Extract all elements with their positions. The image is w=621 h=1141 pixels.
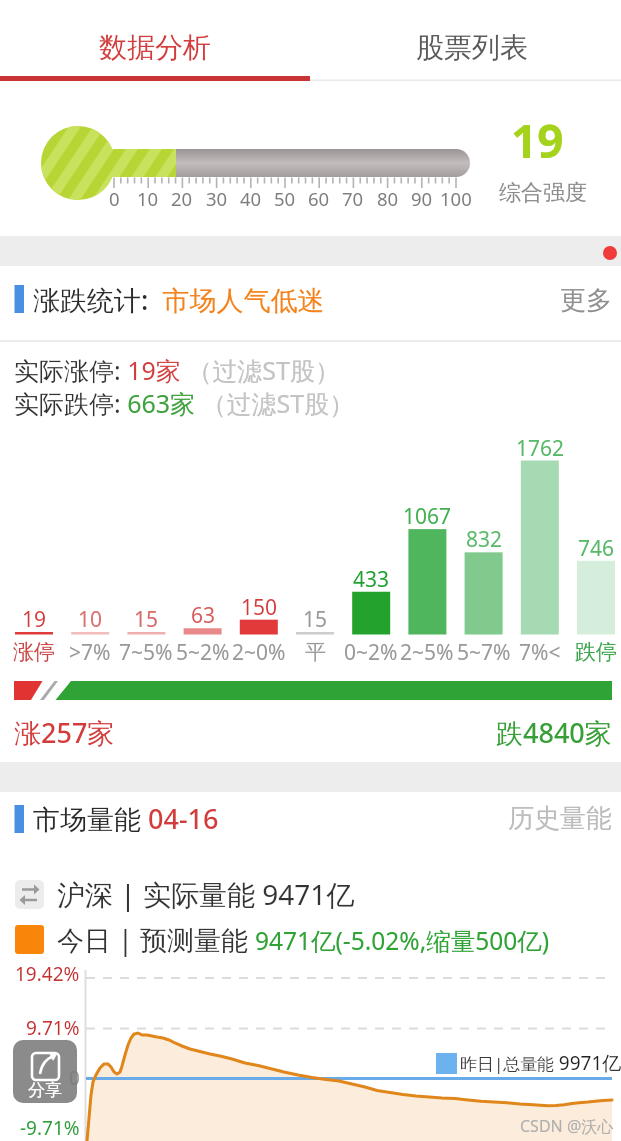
staticText: 832	[466, 525, 503, 554]
staticText: 7%<	[519, 638, 561, 667]
staticText: 20	[171, 186, 193, 211]
staticText: 19	[22, 605, 47, 634]
staticText: 15	[134, 605, 159, 634]
staticText: 涨跌统计: 市场人气低迷	[33, 281, 325, 318]
staticText: 更多	[560, 284, 612, 317]
staticText: 70	[342, 186, 364, 211]
staticText: 1762	[516, 434, 565, 463]
staticText: 433	[353, 565, 390, 594]
staticText: 昨日|总量能 9971亿	[460, 1050, 621, 1076]
staticText: 历史量能	[508, 802, 612, 835]
staticText: >7%	[69, 638, 111, 667]
staticText: 63	[191, 601, 216, 630]
staticText: 涨257家	[14, 714, 115, 751]
staticText: 100	[440, 186, 472, 211]
staticText: 市场量能 04-16	[33, 800, 219, 837]
staticText: 50	[274, 186, 296, 211]
staticText: 10	[137, 186, 159, 211]
staticText: 实际跌停: 663家 （过滤ST股）	[14, 386, 355, 420]
staticText: 今日 | 预测量能 9471亿(-5.02%,缩量500亿)	[57, 921, 550, 958]
staticText: 15	[303, 605, 328, 634]
staticText: 0	[109, 186, 120, 211]
staticText: 9.71%	[26, 1015, 80, 1041]
staticText: 80	[377, 186, 399, 211]
staticText: 746	[578, 534, 615, 563]
staticText: 0	[69, 1065, 80, 1091]
staticText: 0~2%	[344, 638, 398, 667]
staticText: 5~2%	[176, 638, 230, 667]
staticText: 跌4840家	[496, 714, 612, 751]
staticText: 实际涨停: 19家 （过滤ST股）	[14, 353, 340, 387]
staticText: 19	[511, 109, 564, 172]
staticText: 40	[240, 186, 262, 211]
staticText: 150	[241, 593, 278, 622]
staticText: 2~0%	[232, 638, 286, 667]
staticText: 涨停	[13, 639, 55, 665]
staticText: CSDN @沃心	[520, 1115, 614, 1137]
staticText: 10	[78, 605, 103, 634]
staticText: 股票列表	[416, 30, 528, 65]
staticText: 30	[206, 186, 228, 211]
staticText: 7~5%	[119, 638, 173, 667]
staticText: 平	[305, 639, 326, 665]
staticText: 数据分析	[99, 30, 211, 65]
staticText: 综合强度	[499, 179, 587, 207]
staticText: -9.71%	[20, 1115, 80, 1141]
staticText: 沪深 | 实际量能 9471亿	[57, 875, 355, 913]
staticText: 60	[308, 186, 330, 211]
staticText: 1067	[403, 502, 452, 531]
staticText: 5~7%	[457, 638, 511, 667]
staticText: 19.42%	[15, 961, 80, 987]
staticText: 2~5%	[400, 638, 454, 667]
staticText: 90	[411, 186, 433, 211]
staticText: 跌停	[575, 639, 617, 665]
staticText: 分享	[28, 1080, 62, 1101]
